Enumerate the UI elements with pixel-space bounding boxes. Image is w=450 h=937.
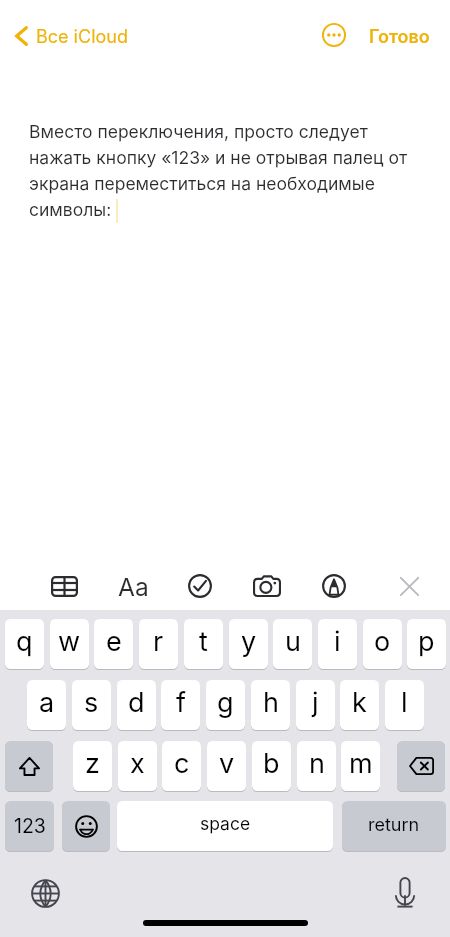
- button[interactable]: i: [318, 619, 357, 669]
- staticText: space: [200, 813, 251, 834]
- staticText: x: [130, 747, 145, 780]
- button[interactable]: Checklist: [178, 568, 222, 604]
- button[interactable]: Change keyboard: [23, 871, 67, 915]
- staticText: e: [106, 625, 122, 658]
- button[interactable]: More: [314, 15, 354, 55]
- staticText: z: [85, 747, 100, 780]
- button[interactable]: Table: [42, 568, 86, 604]
- button[interactable]: return: [342, 801, 446, 851]
- button[interactable]: l: [385, 680, 424, 730]
- staticText: o: [374, 625, 391, 658]
- button[interactable]: Markup: [312, 568, 356, 604]
- button[interactable]: Shift: [5, 741, 53, 791]
- staticText: r: [153, 625, 164, 658]
- button[interactable]: Emoji: [62, 801, 110, 851]
- button[interactable]: g: [206, 680, 245, 730]
- button[interactable]: n: [297, 741, 336, 791]
- button[interactable]: Format text: [111, 569, 155, 605]
- button[interactable]: j: [296, 680, 335, 730]
- staticText: n: [309, 747, 325, 780]
- staticText: Вместо переключения, просто следует нажа…: [29, 121, 421, 220]
- staticText: w: [58, 625, 81, 658]
- button[interactable]: x: [118, 741, 157, 791]
- staticText: l: [401, 686, 408, 719]
- button[interactable]: s: [72, 680, 111, 730]
- staticText: Aa: [118, 572, 149, 602]
- staticText: y: [241, 625, 257, 658]
- button[interactable]: t: [184, 619, 223, 669]
- staticText: q: [16, 625, 33, 658]
- button[interactable]: d: [117, 680, 156, 730]
- button[interactable]: e: [94, 619, 133, 669]
- button[interactable]: z: [73, 741, 112, 791]
- button[interactable]: a: [27, 680, 66, 730]
- staticText: j: [312, 686, 319, 719]
- button[interactable]: Dictate: [383, 870, 427, 914]
- staticText: p: [418, 625, 435, 658]
- button[interactable]: k: [340, 680, 379, 730]
- staticText: s: [84, 686, 99, 719]
- button[interactable]: Camera: [245, 568, 289, 604]
- button[interactable]: 123: [5, 801, 54, 851]
- staticText: c: [174, 747, 190, 780]
- button[interactable]: w: [50, 619, 89, 669]
- button[interactable]: q: [5, 619, 44, 669]
- button[interactable]: f: [161, 680, 200, 730]
- button[interactable]: h: [251, 680, 290, 730]
- button[interactable]: Backspace: [397, 741, 445, 791]
- button[interactable]: Close: [387, 568, 431, 604]
- button[interactable]: r: [139, 619, 178, 669]
- staticText: a: [39, 686, 55, 719]
- staticText: i: [334, 625, 341, 658]
- button[interactable]: space: [117, 801, 333, 851]
- button[interactable]: c: [162, 741, 201, 791]
- staticText: k: [352, 686, 367, 719]
- button[interactable]: v: [207, 741, 246, 791]
- staticText: g: [217, 686, 234, 719]
- staticText: t: [199, 625, 208, 658]
- staticText: return: [368, 814, 420, 836]
- button[interactable]: Готово: [361, 20, 438, 54]
- button[interactable]: m: [341, 741, 380, 791]
- staticText: Все iCloud: [36, 26, 128, 48]
- staticText: m: [349, 747, 373, 780]
- button[interactable]: b: [252, 741, 291, 791]
- staticText: v: [219, 747, 235, 780]
- staticText: d: [128, 686, 145, 719]
- button[interactable]: o: [363, 619, 402, 669]
- button[interactable]: Все iCloud: [6, 16, 134, 56]
- staticText: f: [176, 686, 186, 719]
- staticText: b: [263, 747, 280, 780]
- button[interactable]: p: [407, 619, 446, 669]
- staticText: 123: [14, 814, 46, 838]
- staticText: h: [263, 686, 279, 719]
- staticText: Готово: [369, 26, 430, 48]
- button[interactable]: u: [273, 619, 312, 669]
- staticText: u: [285, 625, 301, 658]
- button[interactable]: y: [229, 619, 268, 669]
